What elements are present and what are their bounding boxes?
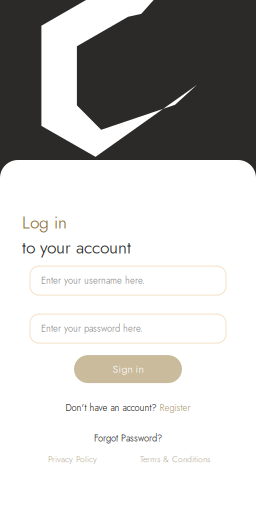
staticText: Enter your username here. xyxy=(41,274,145,287)
staticText: SetConnect xyxy=(58,184,198,226)
staticText: Privacy Policy xyxy=(48,453,97,466)
staticText: Don't have an account? xyxy=(65,401,156,415)
staticText: Log in xyxy=(22,210,67,235)
button[interactable]: Register xyxy=(159,401,190,415)
button[interactable]: Terms & Conditions xyxy=(140,453,210,466)
staticText: Sign in xyxy=(112,361,143,377)
staticText: Enter your password here. xyxy=(41,322,143,335)
button[interactable]: Sign in xyxy=(74,355,182,383)
button[interactable]: Forgot Password? xyxy=(94,432,162,445)
staticText: to your account xyxy=(22,235,131,260)
staticText: Register xyxy=(159,401,190,415)
staticText: Forgot Password? xyxy=(94,432,162,445)
button[interactable]: Privacy Policy xyxy=(48,453,97,466)
staticText: Terms & Conditions xyxy=(140,453,210,466)
